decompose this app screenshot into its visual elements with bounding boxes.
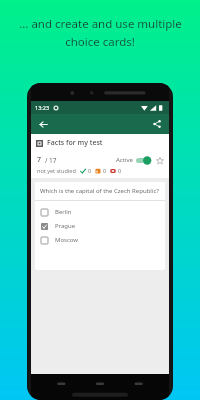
button[interactable]: Active toggle (136, 156, 152, 165)
staticText: Which is the capital of the Czech Republ… (40, 187, 159, 195)
staticText: Berlin (55, 208, 72, 216)
staticText: choice cards! (65, 34, 135, 50)
staticText: not yet studied (37, 167, 76, 174)
staticText: ... and create and use multiple (19, 16, 182, 32)
button[interactable]: Moscow (41, 236, 159, 244)
staticText: 7 (37, 155, 42, 165)
staticText: 0 (103, 167, 107, 174)
button[interactable]: Share (150, 117, 164, 131)
staticText: Prague (55, 222, 76, 230)
staticText: 0 (118, 167, 122, 174)
staticText: / 17 (45, 156, 57, 165)
button[interactable]: Facts for my test (36, 138, 164, 148)
button[interactable]: Prague (41, 222, 159, 230)
staticText: 13:23 (35, 104, 50, 111)
staticText: 0 (88, 167, 92, 174)
button[interactable]: Back (36, 117, 50, 131)
staticText: Moscow (55, 236, 79, 244)
staticText: Facts for my test (47, 138, 103, 148)
button[interactable]: Favorite (155, 156, 164, 165)
button[interactable]: Berlin (41, 208, 159, 216)
button[interactable]: Which is the capital of the Czech Republ… (35, 182, 165, 270)
staticText: Active (116, 156, 133, 164)
